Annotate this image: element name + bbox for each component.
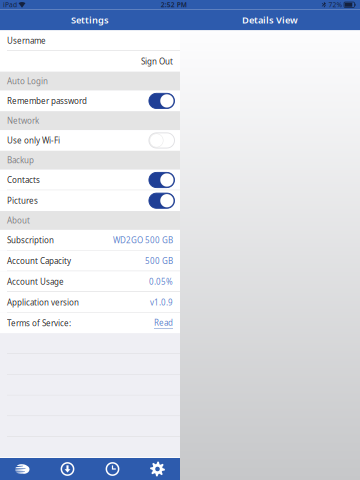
button[interactable]: Sign Out [0,51,180,72]
staticText: Remember password [7,96,87,106]
staticText: 2:52 PM [161,0,187,9]
staticText: Sign Out [141,56,173,67]
button[interactable]: Contacts [0,170,180,190]
button[interactable]: Remember password [0,90,180,111]
staticText: Pictures [7,195,38,206]
staticText: 0.05% [149,276,173,287]
button[interactable]: Account Capacity [0,251,180,271]
staticText: Read [154,317,173,328]
button[interactable]: Pictures [0,190,180,211]
staticText: Application version [7,297,79,308]
staticText: Auto Login [7,76,48,86]
staticText: Account Usage [7,276,64,287]
staticText: v1.0.9 [150,297,173,308]
button[interactable]: Downloads [45,458,90,480]
button[interactable]: Account Usage [0,271,180,292]
button[interactable]: Username [0,30,180,51]
staticText: About [7,215,30,226]
button[interactable]: Application version [0,292,180,313]
staticText: Subscription [7,235,54,245]
staticText: 500 GB [145,256,173,266]
button[interactable]: Terms of Service: [0,313,180,333]
staticText: iPad [3,0,17,9]
staticText: Account Capacity [7,256,71,266]
staticText: Contacts [7,175,40,185]
staticText: 72% [329,0,343,9]
button[interactable]: Recents [90,458,135,480]
staticText: Terms of Service: [7,318,71,328]
button[interactable]: Subscription [0,230,180,251]
staticText: Username [7,35,46,46]
button[interactable]: Use only Wi-Fi [0,130,180,151]
staticText: Details View [242,14,298,26]
staticText: Network [7,115,39,126]
staticText: WD2GO 500 GB [113,235,173,245]
button[interactable]: Files [0,458,45,480]
button[interactable]: Settings [135,458,180,480]
staticText: Use only Wi-Fi [7,135,60,146]
staticText: Backup [7,155,34,165]
staticText: Settings [71,14,109,26]
